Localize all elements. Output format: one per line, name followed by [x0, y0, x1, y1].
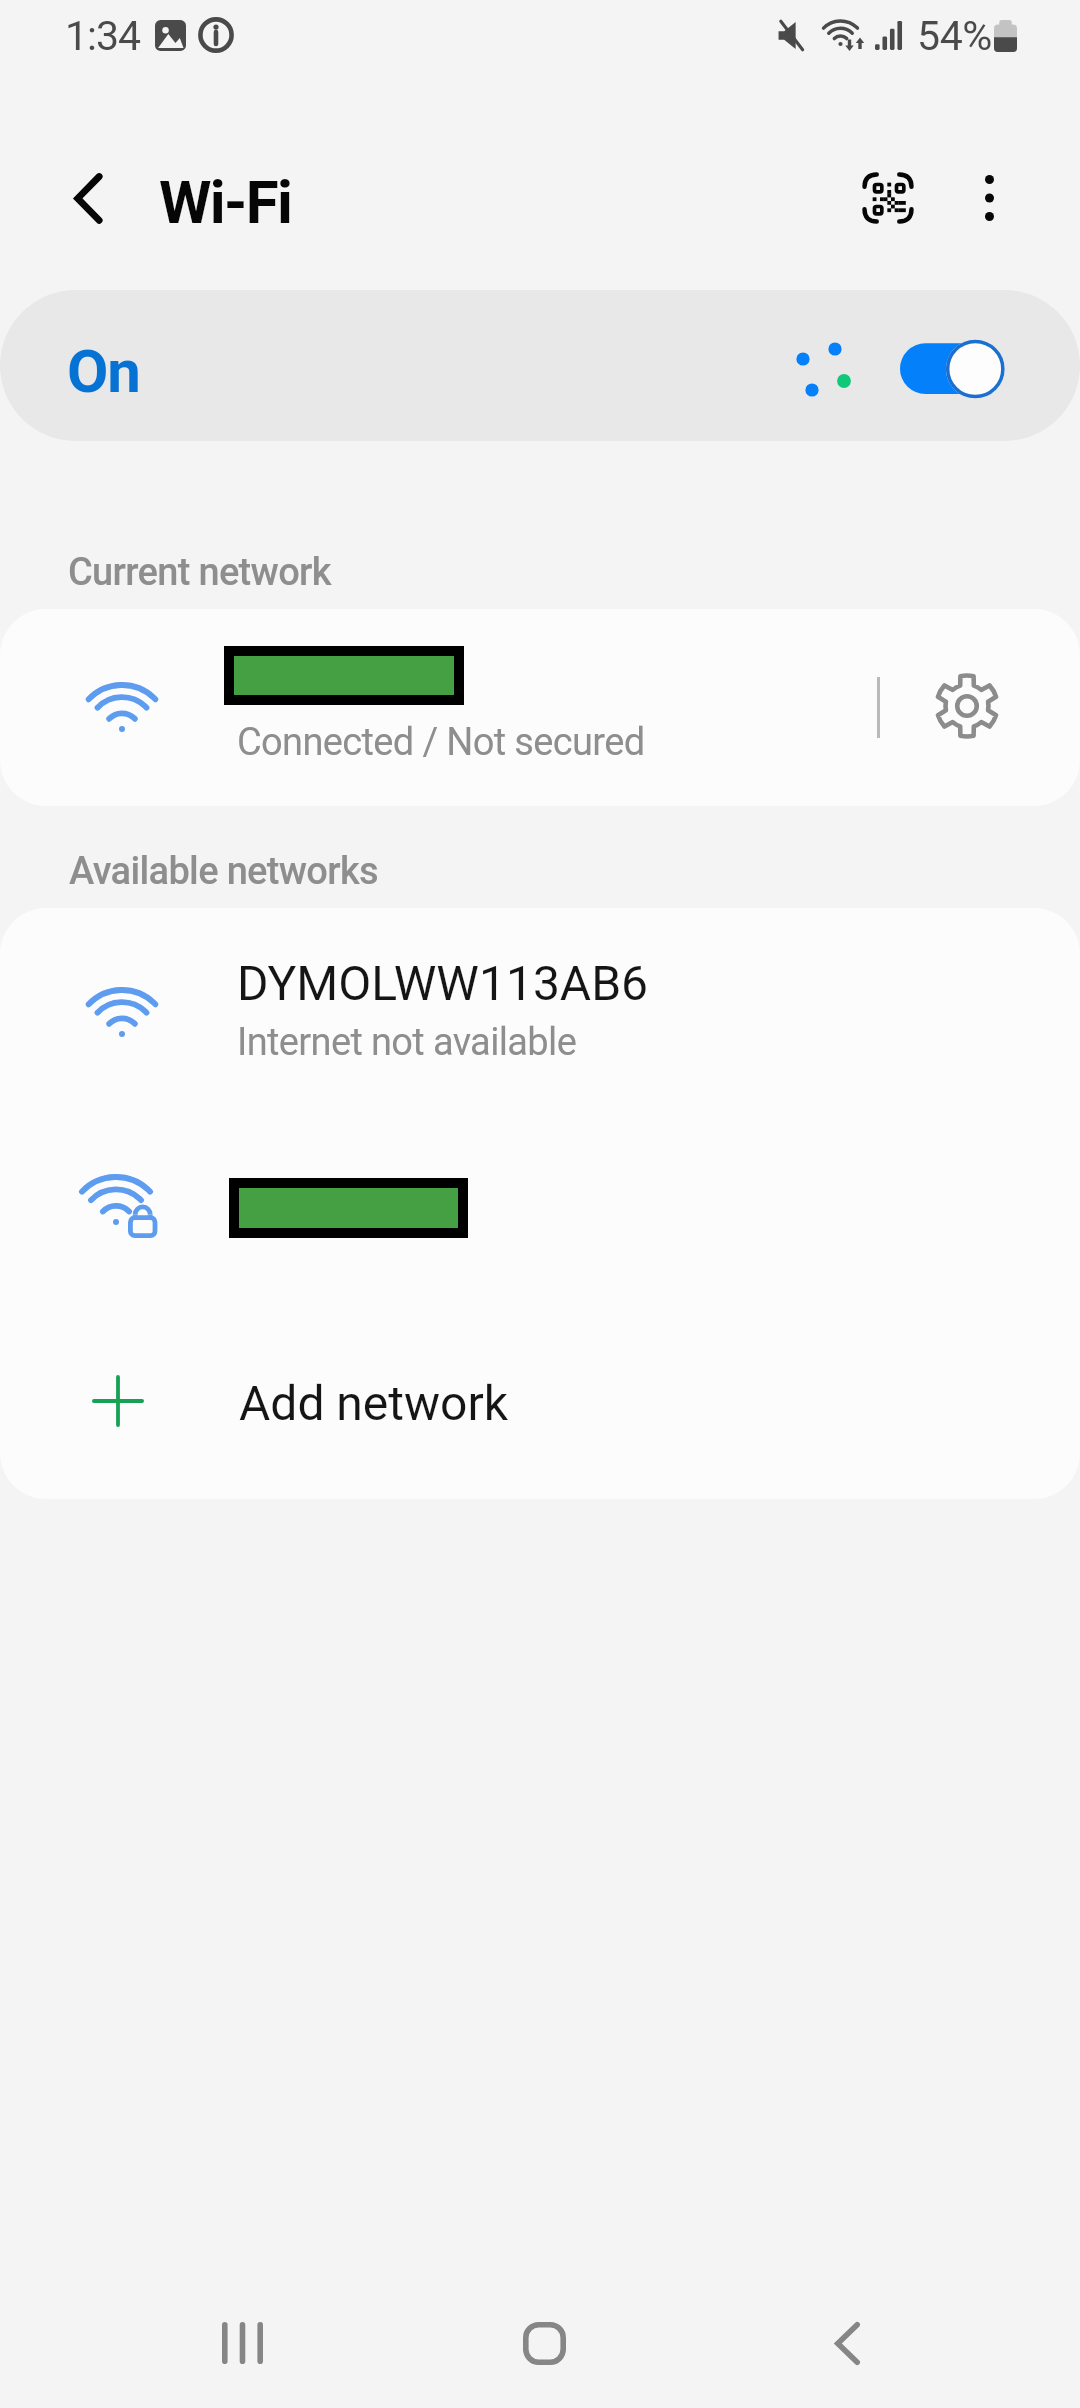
staticText: Connected / Not secured [237, 720, 645, 765]
button[interactable]: Recent apps [182, 2283, 302, 2403]
button[interactable]: Network settings [921, 660, 1013, 752]
staticText: Internet not available [237, 1020, 577, 1065]
button[interactable]: Home [484, 2283, 604, 2403]
staticText: DYMOLWW113AB6 [237, 955, 649, 1011]
staticText: On [67, 336, 140, 406]
button[interactable]: Wi-Fi on [896, 334, 1010, 404]
staticText: Wi-Fi [159, 167, 292, 237]
button[interactable] [0, 1136, 1080, 1318]
button[interactable]: Scan QR code [848, 158, 928, 238]
button[interactable]: Add network [0, 1318, 1080, 1499]
button[interactable]: More options [949, 158, 1029, 238]
staticText: 54% [917, 12, 992, 60]
staticText: Current network [68, 550, 331, 595]
button[interactable]: Navigate up [44, 155, 132, 243]
button[interactable]: On [0, 290, 1080, 441]
button[interactable]: Back [787, 2283, 907, 2403]
button[interactable]: Connected / Not secured [0, 609, 1080, 806]
staticText: Available networks [69, 849, 379, 894]
staticText: 1:34 [65, 12, 140, 60]
staticText: Add network [239, 1375, 509, 1431]
button[interactable]: DYMOLWW113AB6 [0, 908, 1080, 1136]
